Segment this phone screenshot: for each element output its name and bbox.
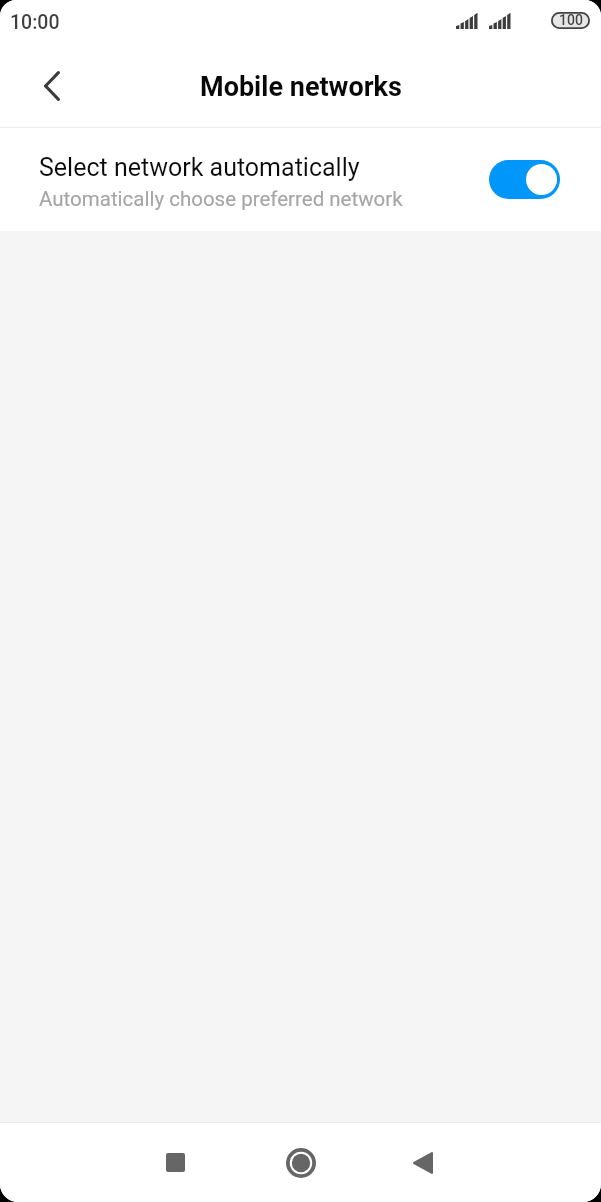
staticText: Mobile networks (200, 71, 402, 103)
button[interactable]: Home (272, 1134, 329, 1191)
staticText: Automatically choose preferred network (39, 187, 403, 211)
button[interactable]: Back (28, 62, 76, 110)
button[interactable]: Recents (147, 1134, 204, 1191)
staticText: Select network automatically (39, 153, 360, 182)
staticText: 10:00 (10, 11, 60, 34)
button[interactable]: Select network automatically (0, 128, 601, 231)
button[interactable]: Select network automatically toggle (489, 160, 560, 199)
button[interactable]: Back (394, 1134, 451, 1191)
staticText: 100 (559, 12, 583, 28)
